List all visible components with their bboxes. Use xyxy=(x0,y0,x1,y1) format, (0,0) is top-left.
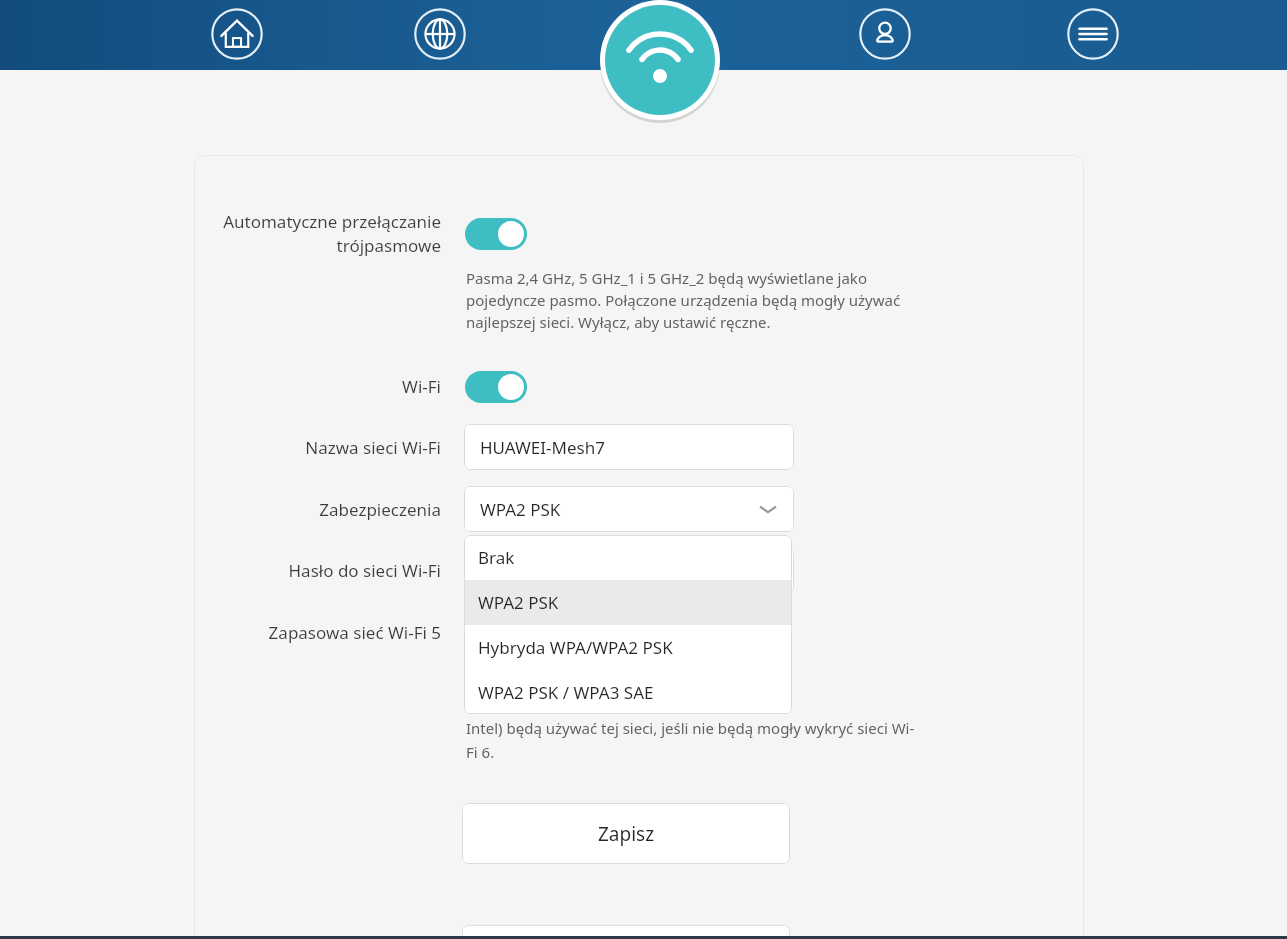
staticText: Zapisz xyxy=(598,821,655,847)
button[interactable]: Home xyxy=(211,8,263,60)
button[interactable]: Internet xyxy=(414,8,466,60)
staticText: Urządzenia ze sterownikami karty sieciow… xyxy=(466,670,915,762)
staticText: WPA2 PSK xyxy=(478,591,559,614)
staticText: Zapasowa sieć Wi-Fi 5 xyxy=(141,621,441,644)
button[interactable]: WPA2 PSK xyxy=(464,486,794,532)
button[interactable]: Wi-Fi xyxy=(600,0,720,120)
staticText: Pasma 2,4 GHz, 5 GHz_1 i 5 GHz_2 będą wy… xyxy=(466,268,916,333)
staticText: Nazwa sieci Wi-Fi xyxy=(141,436,441,459)
staticText: Zabezpieczenia xyxy=(141,498,441,521)
button[interactable]: WPA2 PSK xyxy=(464,580,792,625)
button[interactable]: Menu xyxy=(1067,8,1119,60)
staticText: HUAWEI-Mesh7 xyxy=(480,436,605,459)
button[interactable]: WPA2 PSK / WPA3 SAE xyxy=(464,670,792,714)
staticText: Wi-Fi xyxy=(141,375,441,398)
staticText: Hybryda WPA/WPA2 PSK xyxy=(478,636,673,659)
staticText: Hasło do sieci Wi-Fi xyxy=(141,559,441,582)
button[interactable]: Brak xyxy=(464,535,792,580)
staticText: Brak xyxy=(478,546,515,569)
staticText: Automatyczne przełączanie trójpasmowe xyxy=(141,210,441,257)
button[interactable]: Hybryda WPA/WPA2 PSK xyxy=(464,625,792,670)
button[interactable] xyxy=(462,925,790,939)
button[interactable]: HUAWEI-Mesh7 xyxy=(464,424,794,470)
button[interactable]: Toggle xyxy=(465,371,527,403)
staticText: WPA2 PSK xyxy=(480,498,561,521)
button[interactable]: Account xyxy=(859,8,911,60)
button[interactable] xyxy=(464,547,794,593)
button[interactable]: Zapisz xyxy=(462,803,790,864)
staticText: WPA2 PSK / WPA3 SAE xyxy=(478,681,654,704)
button[interactable]: Toggle xyxy=(465,218,527,250)
